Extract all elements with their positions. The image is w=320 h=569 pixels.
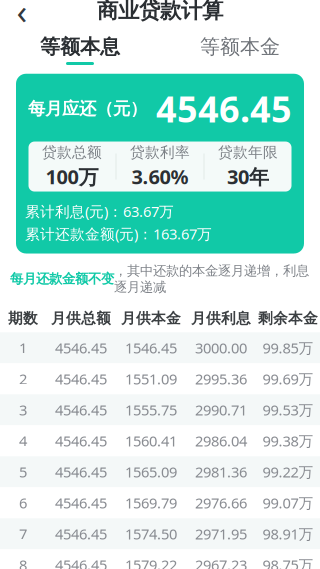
staticText: 1555.75 — [125, 400, 177, 419]
staticText: 月供总额 — [51, 309, 111, 327]
staticText: 4546.45 — [55, 524, 107, 543]
staticText: 6 — [19, 493, 27, 512]
staticText: 2981.36 — [195, 462, 247, 481]
button[interactable]: Back — [0, 0, 44, 29]
staticText: 每月还款金额不变 — [10, 271, 114, 287]
staticText: 4546.45 — [55, 369, 107, 388]
staticText: 98.91万 — [262, 524, 313, 543]
staticText: 4546.45 — [55, 400, 107, 419]
staticText: 3000.00 — [195, 338, 247, 357]
staticText: 99.53万 — [262, 400, 313, 419]
staticText: 8 — [19, 555, 27, 569]
staticText: 每月应还（元） — [28, 98, 147, 119]
staticText: 99.38万 — [262, 431, 313, 450]
staticText: 4546.45 — [55, 493, 107, 512]
staticText: 期数 — [8, 309, 38, 327]
staticText: 2986.04 — [195, 431, 247, 450]
staticText: 98.75万 — [262, 555, 313, 569]
staticText: 100万 — [45, 163, 98, 190]
staticText: 1574.50 — [125, 524, 177, 543]
staticText: 4546.45 — [55, 338, 107, 357]
staticText: 2971.95 — [195, 524, 247, 543]
staticText: 等额本息 — [40, 34, 120, 59]
staticText: 4546.45 — [156, 85, 292, 132]
staticText: ，其中还款的本金逐月递增，利息逐月递减 — [114, 262, 309, 295]
staticText: 4546.45 — [55, 462, 107, 481]
staticText: 4 — [19, 431, 27, 450]
staticText: 3.60% — [131, 163, 188, 190]
staticText: 30年 — [227, 163, 269, 190]
staticText: 99.07万 — [262, 493, 313, 512]
staticText: 4546.45 — [55, 555, 107, 569]
staticText: 累计还款金额(元)：163.67万 — [25, 224, 212, 243]
staticText: 1551.09 — [125, 369, 177, 388]
staticText: 累计利息(元)：63.67万 — [25, 201, 174, 221]
staticText: 商业贷款计算 — [97, 0, 223, 24]
staticText: 1569.79 — [125, 493, 177, 512]
staticText: 99.22万 — [262, 462, 313, 481]
staticText: 4546.45 — [55, 431, 107, 450]
staticText: 1546.45 — [125, 338, 177, 357]
staticText: 月供本金 — [121, 309, 181, 327]
staticText: 1560.41 — [125, 431, 177, 450]
staticText: 2995.36 — [195, 369, 247, 388]
staticText: 7 — [19, 524, 27, 543]
staticText: 3 — [19, 400, 27, 419]
staticText: 剩余本金 — [258, 309, 318, 327]
staticText: 5 — [19, 462, 27, 481]
staticText: 贷款总额 — [42, 143, 102, 161]
staticText: 月供利息 — [191, 309, 251, 327]
staticText: 1565.09 — [125, 462, 177, 481]
staticText: 等额本金 — [200, 34, 280, 59]
button[interactable]: 等额本金 — [160, 30, 320, 70]
staticText: 2990.71 — [195, 400, 247, 419]
staticText: 贷款利率 — [130, 143, 190, 161]
staticText: 2967.23 — [195, 555, 247, 569]
staticText: 99.85万 — [262, 338, 313, 357]
staticText: 2976.66 — [195, 493, 247, 512]
staticText: 99.69万 — [262, 369, 313, 388]
staticText: 贷款年限 — [218, 143, 278, 161]
staticText: 2 — [19, 369, 27, 388]
staticText: 1579.22 — [125, 555, 177, 569]
button[interactable]: 等额本息 — [0, 30, 160, 70]
staticText: 1 — [19, 338, 27, 357]
staticText: ‹ — [16, 0, 27, 34]
